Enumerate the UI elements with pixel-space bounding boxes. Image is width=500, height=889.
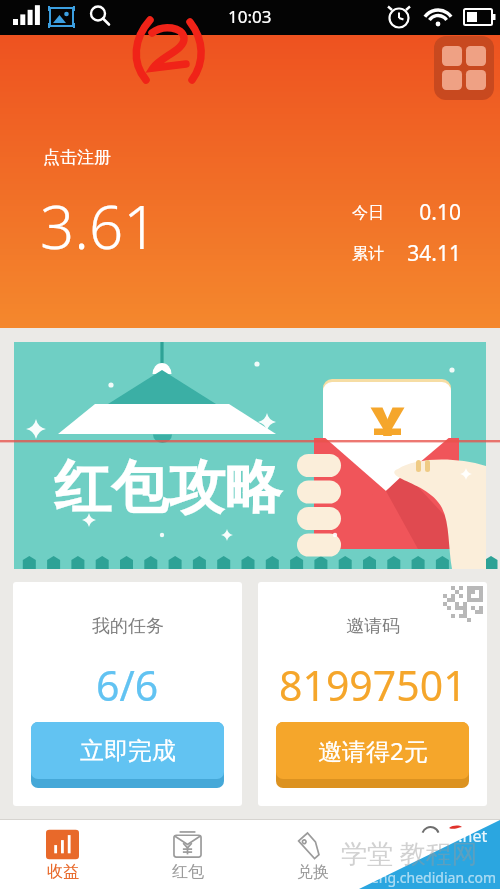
button[interactable]: 红包攻略 banner (14, 342, 486, 569)
staticText: 10:03 (228, 5, 272, 28)
button[interactable]: 收益 (0, 820, 125, 889)
staticText: 6/6 (96, 657, 159, 713)
staticText: 34.11 (384, 239, 461, 268)
button[interactable] (375, 820, 500, 889)
staticText: 81997501 (279, 657, 467, 713)
staticText: 邀请得2元 (318, 734, 428, 767)
staticText: 立即完成 (80, 736, 176, 766)
staticText: jiaocheng.chedidian.com (332, 868, 497, 887)
button[interactable]: 红包 (125, 820, 250, 889)
staticText: 0.10 (384, 198, 461, 227)
staticText: 3.61 (40, 185, 158, 267)
staticText: 兑换 (297, 862, 329, 882)
staticText: 学堂 教程网 (341, 835, 478, 871)
button[interactable]: 邀请得2元 (276, 722, 469, 779)
staticText: 红包攻略 (54, 452, 282, 524)
button[interactable]: Apps menu (434, 36, 494, 100)
button[interactable]: 兑换 (250, 820, 375, 889)
staticText: 累计 (352, 244, 384, 264)
staticText: 今日 (352, 203, 384, 223)
staticText: jb51.net (426, 825, 488, 847)
staticText: 收益 (47, 862, 79, 882)
staticText: 邀请码 (346, 615, 400, 638)
staticText: 我的任务 (92, 615, 164, 638)
staticText: 红包 (172, 862, 204, 882)
button[interactable]: 点击注册 (43, 147, 111, 168)
button[interactable]: 立即完成 (31, 722, 224, 779)
